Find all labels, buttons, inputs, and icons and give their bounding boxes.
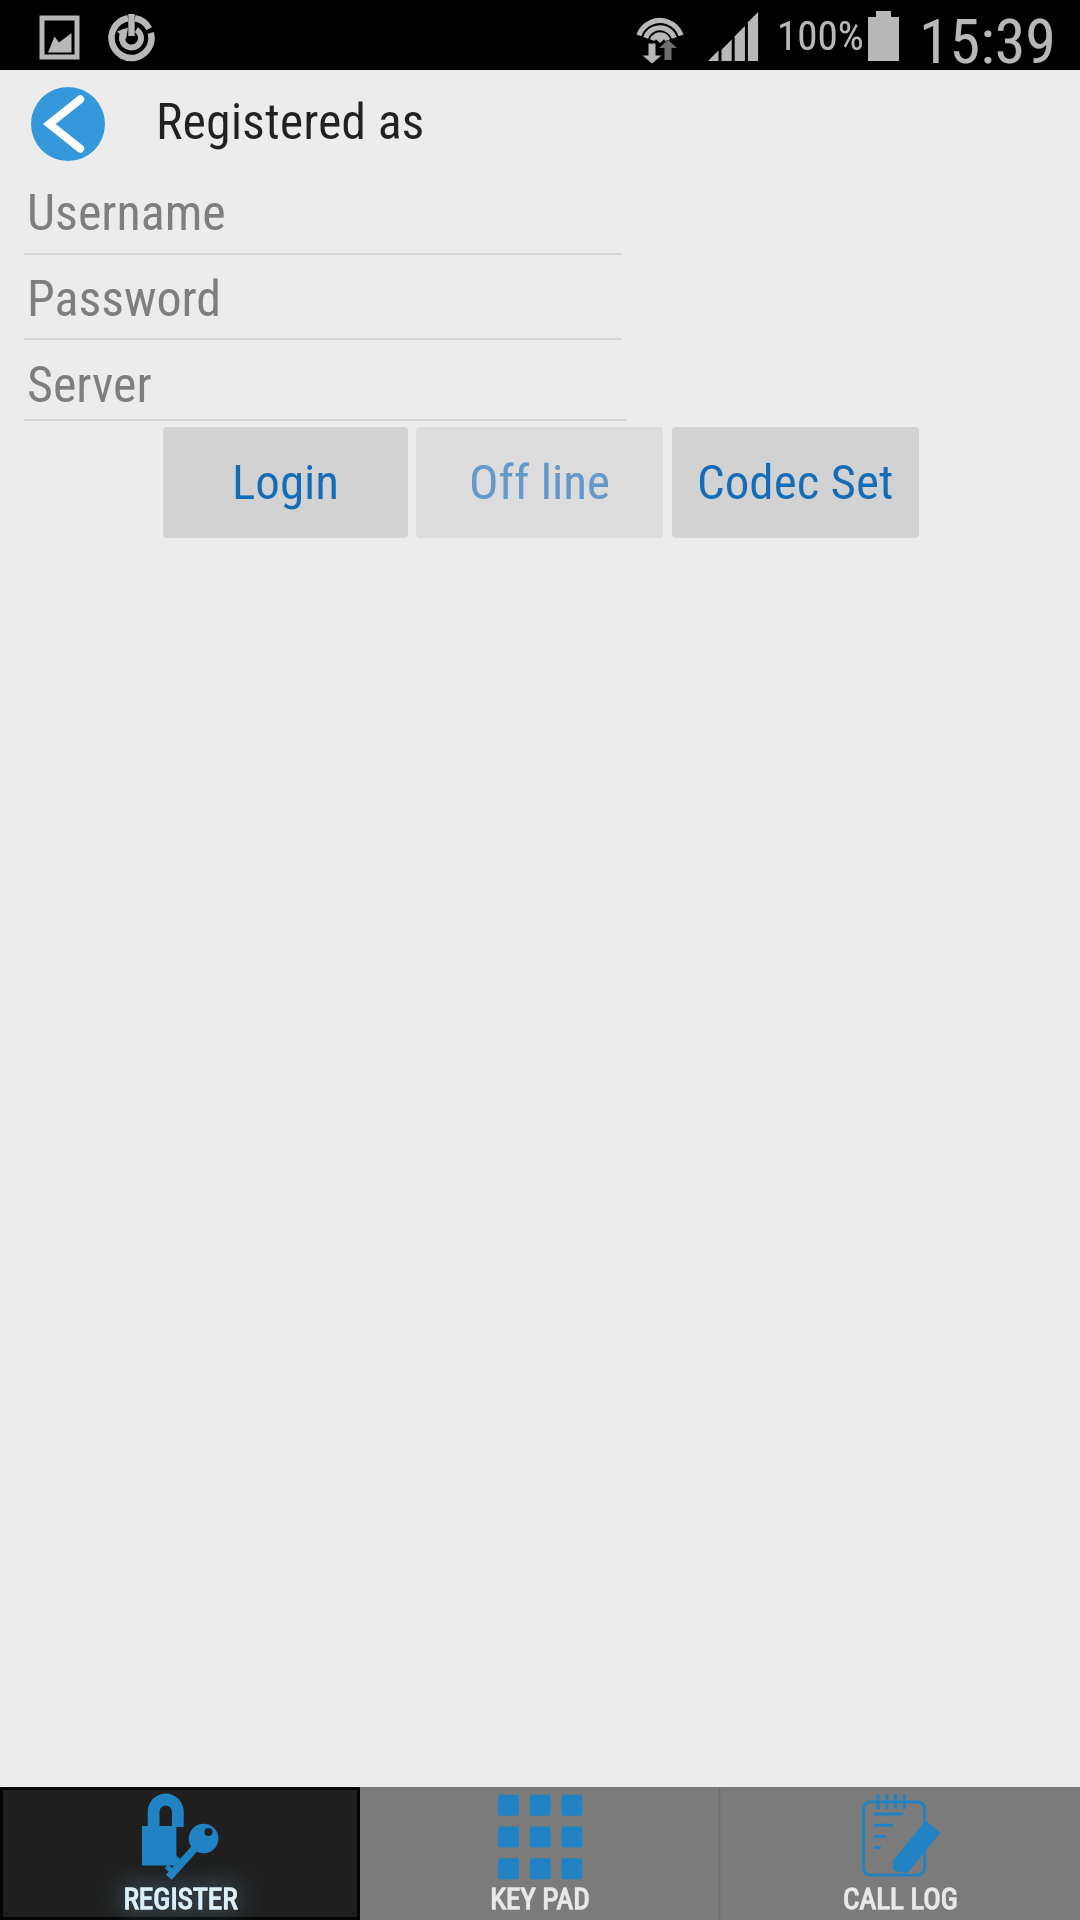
staticText: REGISTER [123,1882,238,1916]
staticText: Username [27,184,226,243]
button[interactable]: REGISTER [0,1787,360,1920]
staticText: Off line [469,454,610,511]
staticText: Login [232,454,340,511]
staticText: Registered as [156,93,425,152]
staticText: REGISTER [123,1882,238,1916]
button[interactable]: Login [163,427,408,538]
button[interactable]: Username [0,178,1080,255]
staticText: 100% [777,12,864,60]
staticText: Password [27,270,222,329]
button[interactable]: Back [31,87,105,161]
button[interactable]: Off line [416,427,663,538]
button[interactable]: Server [0,340,1080,421]
staticText: Codec Set [697,454,894,511]
button[interactable]: KEY PAD [360,1787,720,1920]
staticText: Server [27,356,152,415]
button[interactable]: CALL LOG [720,1787,1080,1920]
button[interactable]: Codec Set [672,427,919,538]
staticText: KEY PAD [490,1882,590,1916]
staticText: 15:39 [919,5,1056,75]
button[interactable]: Password [0,255,1080,340]
staticText: CALL LOG [843,1882,958,1916]
